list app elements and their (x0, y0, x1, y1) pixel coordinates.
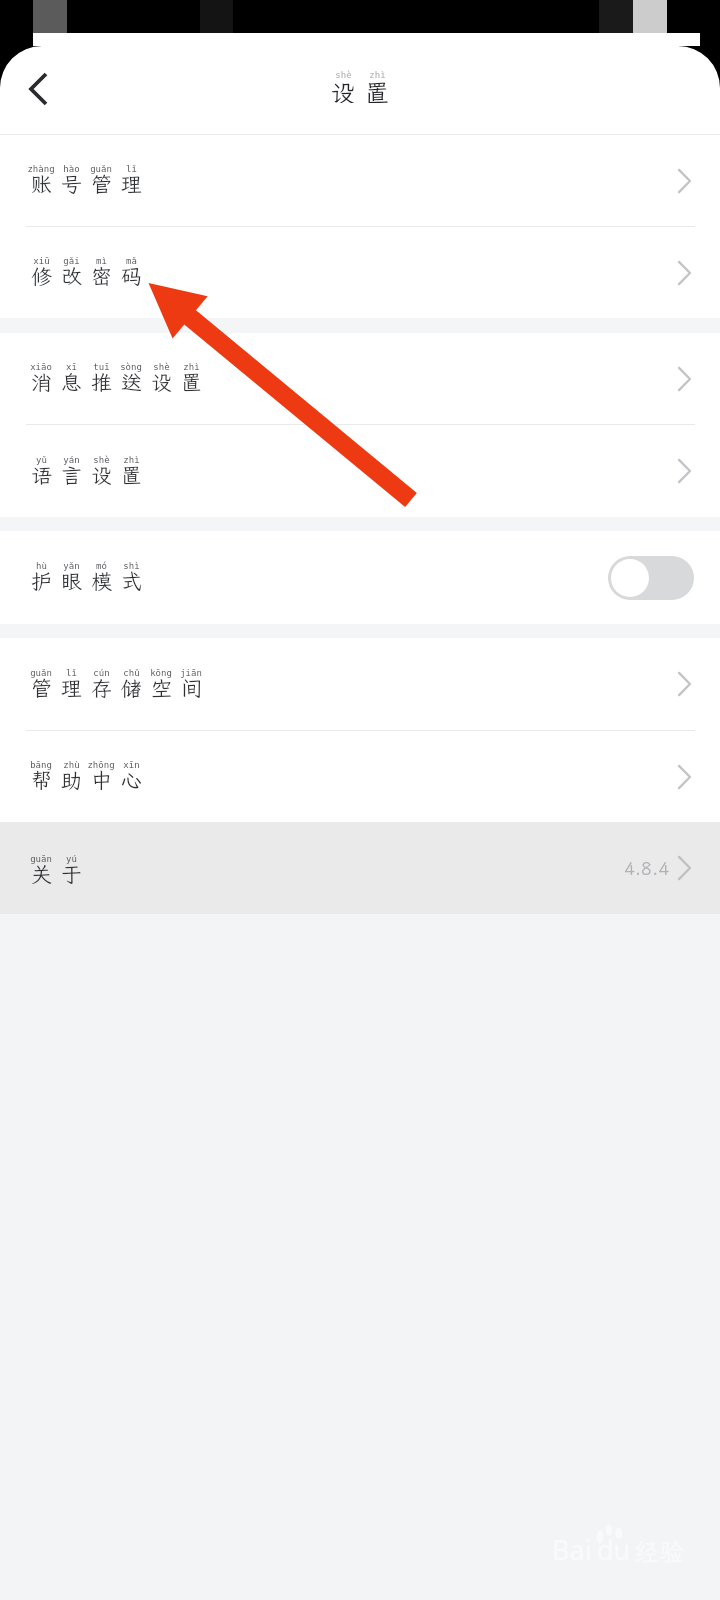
staticText: 心 (121, 766, 142, 790)
staticText: xīn (123, 760, 140, 770)
staticText: 改 (61, 262, 82, 286)
button[interactable]: xiū (0, 227, 720, 318)
staticText: 推 (91, 368, 112, 392)
staticText: yǎn (63, 561, 80, 571)
staticText: 于 (61, 860, 82, 884)
button[interactable]: yǔ (0, 425, 720, 517)
button[interactable]: xiāo (0, 333, 720, 424)
staticText: zhàng (27, 164, 55, 174)
staticText: chǔ (123, 668, 140, 678)
staticText: zhì (123, 455, 140, 465)
staticText: mó (96, 561, 107, 571)
staticText: 管 (31, 674, 52, 698)
staticText: 储 (121, 674, 142, 698)
staticText: 送 (121, 368, 142, 392)
staticText: 帮 (31, 766, 52, 790)
staticText: guǎn (30, 668, 52, 678)
staticText: 置 (364, 76, 390, 103)
staticText: xiū (33, 256, 50, 266)
staticText: zhì (183, 362, 200, 372)
staticText: 置 (181, 368, 202, 392)
staticText: 语 (31, 461, 52, 485)
staticText: yú (66, 854, 77, 864)
button[interactable]: guǎn (0, 638, 720, 730)
staticText: 号 (61, 170, 82, 194)
staticText: jiān (180, 668, 202, 678)
staticText: shè (335, 70, 352, 80)
staticText: guǎn (90, 164, 112, 174)
staticText: kōng (150, 668, 172, 678)
staticText: lǐ (66, 668, 77, 678)
staticText: hào (63, 164, 80, 174)
staticText: 设 (330, 76, 356, 103)
staticText: xiāo (30, 362, 52, 372)
staticText: 置 (121, 461, 142, 485)
staticText: cún (93, 668, 110, 678)
staticText: 码 (121, 262, 142, 286)
staticText: yǔ (36, 455, 47, 465)
button[interactable]: bāng (0, 731, 720, 822)
staticText: lǐ (126, 164, 137, 174)
staticText: 言 (61, 461, 82, 485)
staticText: xī (66, 362, 77, 372)
staticText: mì (96, 256, 107, 266)
staticText: 修 (31, 262, 52, 286)
staticText: 理 (61, 674, 82, 698)
button[interactable]: guān (0, 822, 720, 914)
staticText: 关 (31, 860, 52, 884)
staticText: 护 (31, 567, 52, 591)
staticText: shè (93, 455, 110, 465)
staticText: yán (63, 455, 80, 465)
staticText: 设 (151, 368, 172, 392)
staticText: shì (123, 561, 140, 571)
staticText: 4.8.4 (624, 856, 669, 880)
staticText: gǎi (63, 256, 80, 266)
staticText: 管 (91, 170, 112, 194)
staticText: zhōng (87, 760, 115, 770)
staticText: sòng (120, 362, 142, 372)
staticText: bāng (30, 760, 52, 770)
staticText: hù (36, 561, 47, 571)
staticText: mǎ (126, 256, 137, 266)
staticText: 密 (91, 262, 112, 286)
staticText: 设 (91, 461, 112, 485)
staticText: guān (30, 854, 52, 864)
staticText: 空 (151, 674, 172, 698)
staticText: 助 (61, 766, 82, 790)
staticText: shè (153, 362, 170, 372)
button[interactable]: hù (0, 531, 720, 624)
staticText: 息 (61, 368, 82, 392)
staticText: 模 (91, 567, 112, 591)
staticText: zhì (369, 70, 386, 80)
staticText: 存 (91, 674, 112, 698)
staticText: zhù (63, 760, 80, 770)
staticText: 理 (121, 170, 142, 194)
button[interactable]: 返回 (13, 64, 63, 114)
staticText: tuī (93, 362, 110, 372)
staticText: 消 (31, 368, 52, 392)
staticText: 间 (181, 674, 202, 698)
staticText: 式 (121, 567, 142, 591)
staticText: 中 (91, 766, 112, 790)
button[interactable]: zhàng (0, 135, 720, 226)
staticText: 账 (31, 170, 52, 194)
button[interactable]: 护眼模式开关 (608, 556, 694, 600)
staticText: 眼 (61, 567, 82, 591)
